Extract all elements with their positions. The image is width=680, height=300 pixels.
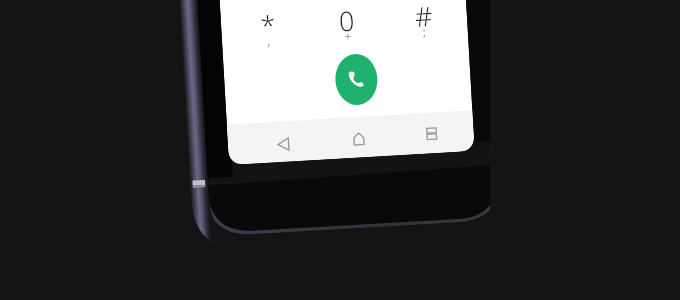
button[interactable]: Phone dialer keypad on device — [0, 0, 680, 300]
